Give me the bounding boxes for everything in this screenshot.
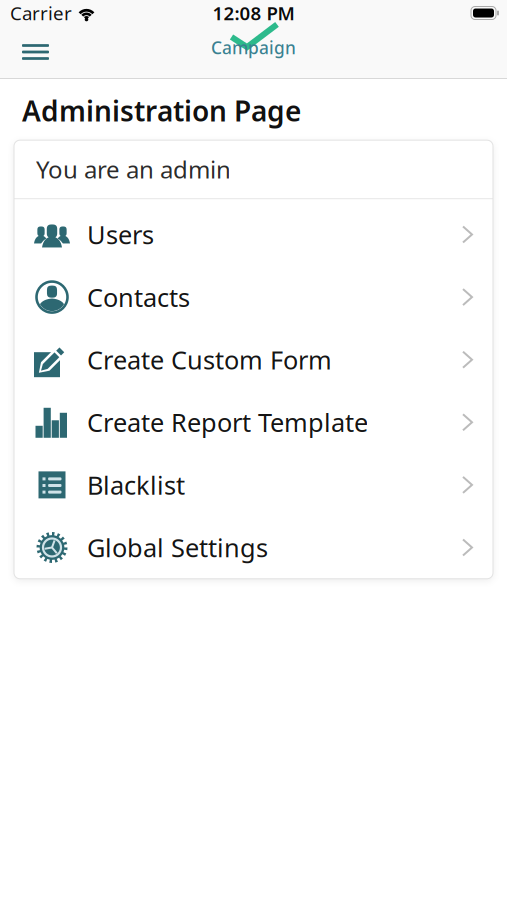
staticText: Administration Page <box>22 92 301 129</box>
button[interactable]: Blacklist <box>14 454 493 516</box>
staticText: Contacts <box>87 280 190 314</box>
button[interactable]: Contacts <box>14 266 493 328</box>
button[interactable]: Menu <box>0 44 49 60</box>
button[interactable]: Global Settings <box>14 516 493 579</box>
button[interactable]: Create Report Template <box>14 391 493 454</box>
staticText: Carrier <box>10 1 72 25</box>
staticText: Users <box>87 218 154 251</box>
button[interactable]: Users <box>14 203 493 266</box>
staticText: Create Custom Form <box>87 343 332 376</box>
staticText: 12:08 PM <box>212 1 294 25</box>
staticText: You are an admin <box>36 153 231 185</box>
staticText: Create Report Template <box>87 405 368 439</box>
button[interactable]: Create Custom Form <box>14 328 493 391</box>
staticText: Global Settings <box>87 531 268 564</box>
staticText: Blacklist <box>87 468 185 502</box>
staticText: Campaign <box>211 36 296 59</box>
